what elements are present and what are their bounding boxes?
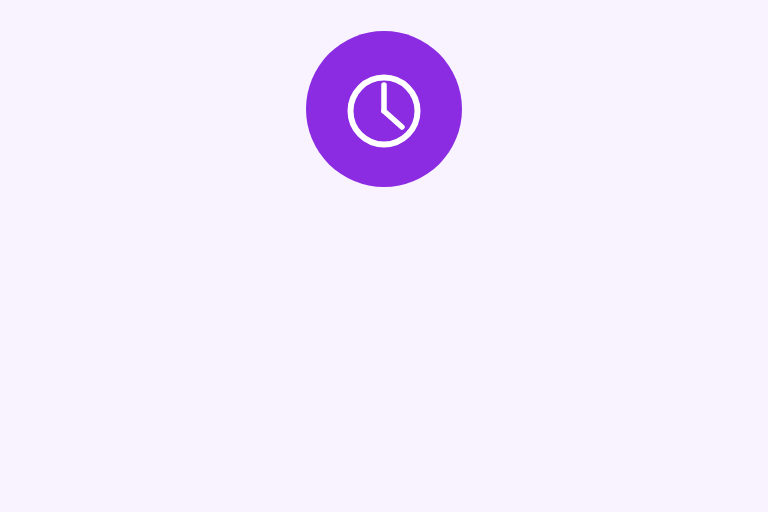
button[interactable]: Clock bbox=[306, 31, 462, 187]
